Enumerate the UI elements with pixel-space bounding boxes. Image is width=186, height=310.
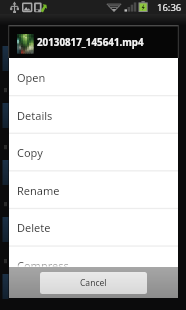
- button[interactable]: Details: [9, 96, 178, 134]
- staticText: Copy: [17, 145, 43, 160]
- staticText: 16:36: [157, 1, 182, 14]
- button[interactable]: Delete: [9, 208, 178, 246]
- button[interactable]: Copy: [9, 133, 178, 171]
- staticText: Delete: [17, 220, 51, 235]
- staticText: Rename: [17, 183, 60, 198]
- button[interactable]: Compress: [9, 246, 178, 284]
- staticText: Compress: [17, 258, 69, 273]
- button[interactable]: Open: [9, 58, 178, 96]
- button[interactable]: Cancel: [40, 272, 147, 294]
- staticText: Details: [17, 108, 53, 123]
- button[interactable]: Rename: [9, 171, 178, 209]
- staticText: 20130817_145641.mp4: [37, 36, 144, 49]
- staticText: Cancel: [80, 277, 107, 289]
- staticText: Open: [17, 70, 46, 85]
